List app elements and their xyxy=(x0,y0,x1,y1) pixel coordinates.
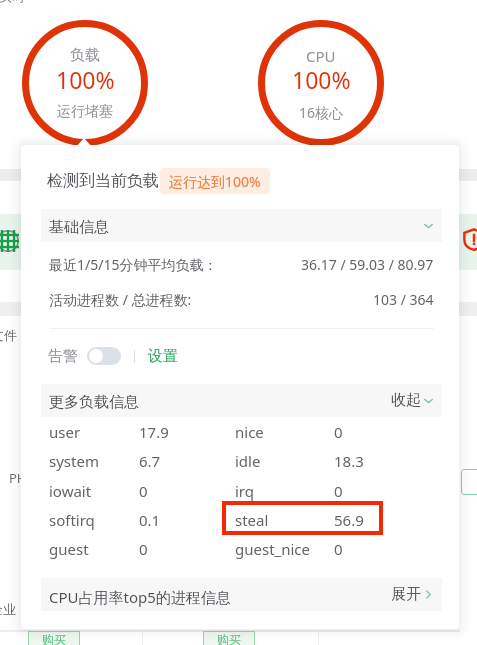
staticText: CPU xyxy=(306,46,336,66)
staticText: 检测到当前负载 xyxy=(47,171,159,191)
staticText: 收起 xyxy=(391,391,421,410)
button[interactable] xyxy=(461,469,477,495)
staticText: nice xyxy=(235,422,334,442)
staticText: idle xyxy=(235,451,334,471)
staticText: system xyxy=(49,451,139,471)
staticText: 18.3 xyxy=(334,451,364,471)
other: Network xyxy=(0,230,19,252)
staticText: 运行堵塞 xyxy=(57,103,113,121)
staticText: 运行达到100% xyxy=(169,172,261,191)
staticText: 0 xyxy=(334,539,343,559)
staticText: iowait xyxy=(49,481,139,501)
button[interactable]: 负载 xyxy=(22,20,148,146)
staticText: 0 xyxy=(139,539,235,559)
staticText: 文件 xyxy=(0,327,17,343)
staticText: 0 xyxy=(139,481,235,501)
staticText: irq xyxy=(235,481,334,501)
staticText: 16核心 xyxy=(299,103,344,122)
button[interactable]: 购买 xyxy=(203,631,255,645)
staticText: 展开 xyxy=(391,585,421,604)
staticText: steal xyxy=(235,510,334,530)
staticText: 0.1 xyxy=(139,510,235,530)
staticText: 100% xyxy=(292,64,351,95)
staticText: 企业 xyxy=(0,601,16,617)
staticText: 100% xyxy=(56,64,115,95)
staticText: 基础信息 xyxy=(49,218,109,237)
other: Security alert xyxy=(463,228,477,250)
staticText: 最近1/5/15分钟平均负载： xyxy=(49,255,218,274)
staticText: 负载 xyxy=(70,46,100,65)
staticText: 36.17 / 59.03 / 80.97 xyxy=(301,255,434,274)
button[interactable]: 购买 xyxy=(28,631,80,645)
button[interactable]: CPU占用率top5的进程信息 xyxy=(41,578,442,611)
button[interactable]: 设置 xyxy=(148,347,178,366)
staticText: user xyxy=(49,422,139,442)
staticText: 告警 xyxy=(48,347,78,366)
staticText: 更多负载信息 xyxy=(49,393,139,412)
staticText: 6.7 xyxy=(139,451,235,471)
staticText: 实时 xyxy=(0,0,25,4)
staticText: 购买 xyxy=(217,632,241,645)
staticText: 活动进程数 / 总进程数: xyxy=(49,290,192,309)
button[interactable]: Alarm toggle xyxy=(87,347,121,365)
staticText: 56.9 xyxy=(334,510,364,530)
staticText: 0 xyxy=(334,422,343,442)
button[interactable]: 基础信息 xyxy=(41,209,442,242)
staticText: 17.9 xyxy=(139,422,235,442)
button[interactable]: CPU xyxy=(258,20,384,146)
staticText: PH xyxy=(9,469,27,487)
button[interactable]: 更多负载信息 xyxy=(41,384,442,417)
staticText: CPU占用率top5的进程信息 xyxy=(49,587,231,607)
staticText: 103 / 364 xyxy=(373,290,434,309)
staticText: 0 xyxy=(334,481,343,501)
staticText: guest_nice xyxy=(235,539,334,559)
staticText: 购买 xyxy=(42,632,66,645)
staticText: softirq xyxy=(49,510,139,530)
staticText: guest xyxy=(49,539,139,559)
